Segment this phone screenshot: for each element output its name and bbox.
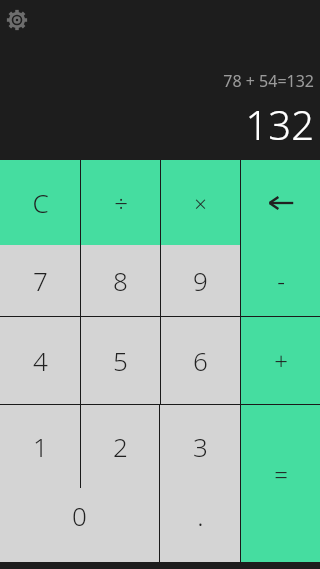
button[interactable]: ÷ [81,160,160,245]
button[interactable]: C [0,160,80,245]
button[interactable]: × [161,160,240,245]
staticText: 6 [193,343,208,378]
staticText: 7 [33,263,48,298]
button[interactable]: 0 [0,488,159,562]
button[interactable]: 3 [160,405,240,488]
button[interactable]: 2 [81,405,159,488]
staticText: = [274,458,288,491]
button[interactable]: 4 [0,317,80,404]
staticText: × [194,188,207,218]
staticText: 78 + 54=132 [223,70,314,92]
staticText: ÷ [114,186,128,219]
staticText: 5 [113,343,128,378]
staticText: - [277,264,285,297]
staticText: 132 [245,97,314,151]
button[interactable]: Backspace [241,160,320,245]
staticText: 1 [33,429,48,464]
staticText: 3 [193,429,208,464]
button[interactable]: 5 [81,317,160,404]
staticText: C [32,185,49,220]
button[interactable]: 8 [81,245,160,316]
button[interactable]: 7 [0,245,80,316]
staticText: + [274,344,288,377]
staticText: 0 [72,498,87,533]
button[interactable]: 9 [161,245,240,316]
button[interactable]: + [241,317,320,404]
button[interactable]: 6 [161,317,240,404]
button[interactable]: 1 [0,405,80,488]
staticText: 8 [113,263,128,298]
staticText: 2 [113,429,128,464]
button[interactable]: Settings [6,9,28,31]
staticText: 9 [193,263,208,298]
button[interactable]: = [241,405,320,562]
staticText: . [197,498,204,533]
button[interactable]: . [160,488,240,562]
staticText: 4 [33,343,48,378]
button[interactable]: - [241,245,320,316]
